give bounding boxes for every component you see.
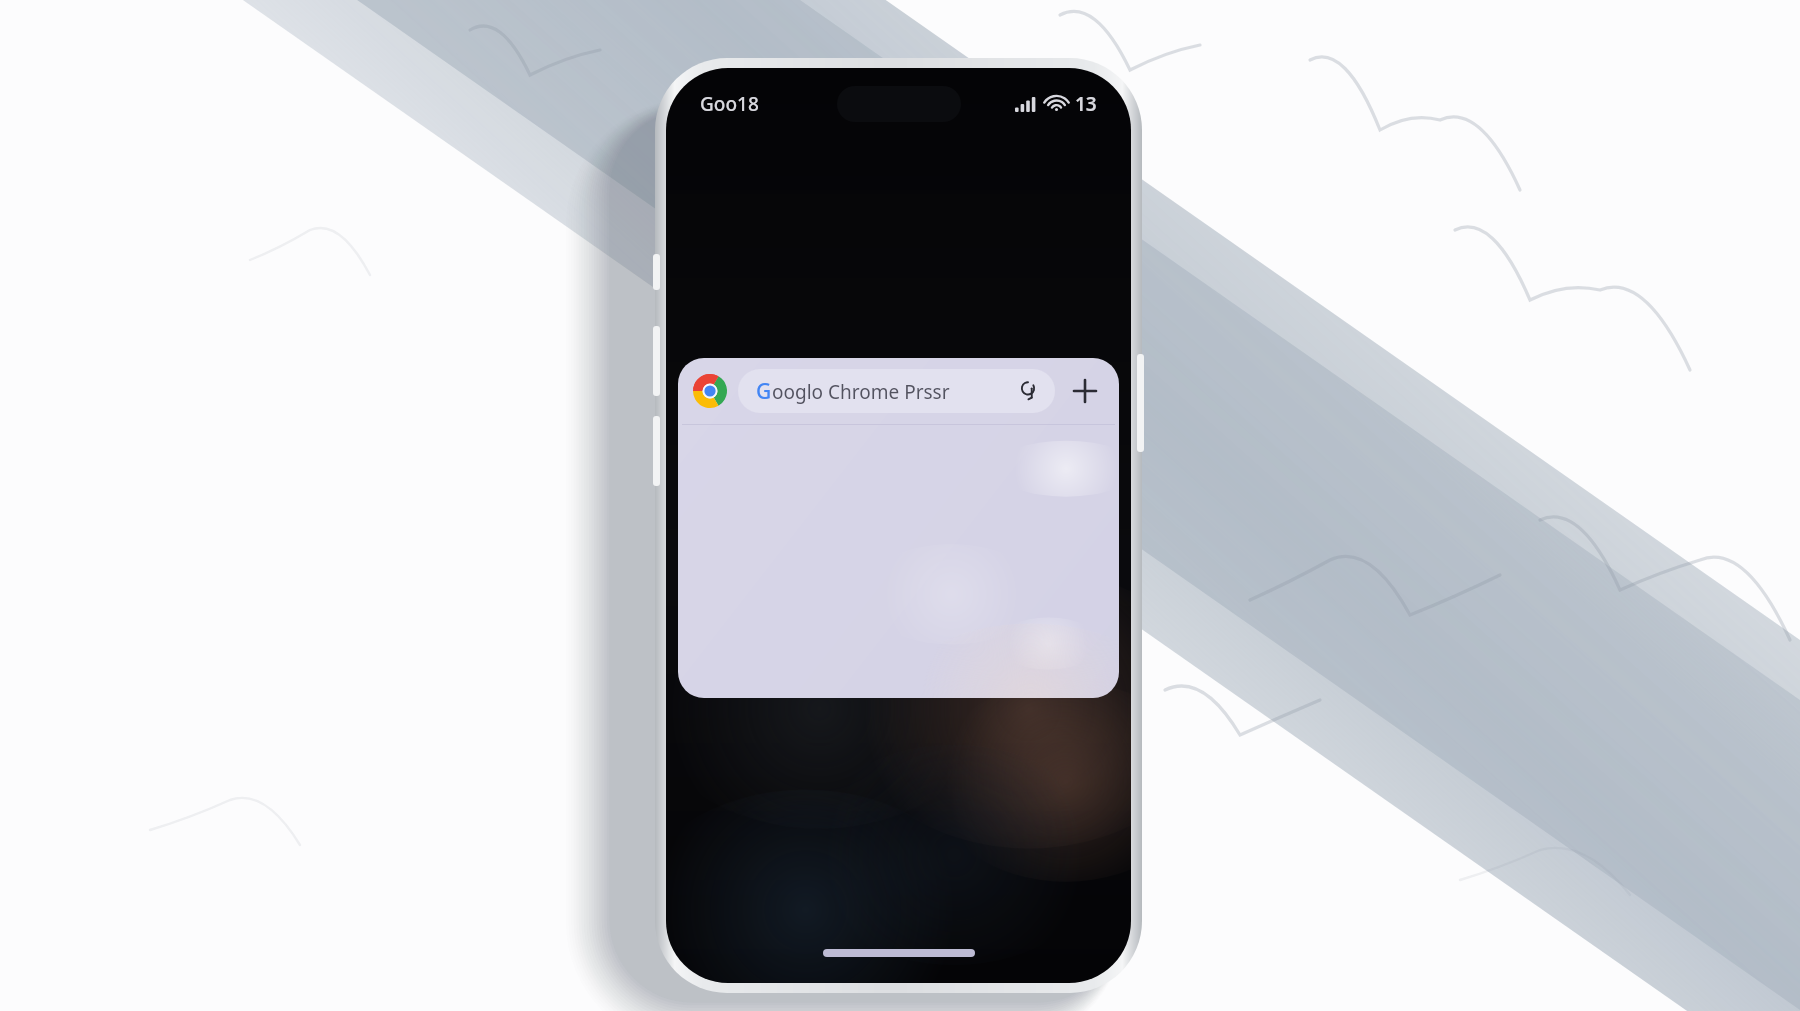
button[interactable]: G	[756, 369, 1045, 413]
staticText: G	[756, 377, 772, 406]
button[interactable]: Voice search	[1011, 374, 1045, 408]
button[interactable]: New tab	[1065, 371, 1105, 411]
button[interactable]: Chrome	[690, 371, 730, 411]
staticText: ooglo Chrome Prssr	[772, 379, 950, 405]
staticText: Goo18	[700, 91, 759, 117]
staticText: 13	[1075, 91, 1097, 117]
button[interactable]: Chrome	[678, 358, 1119, 698]
